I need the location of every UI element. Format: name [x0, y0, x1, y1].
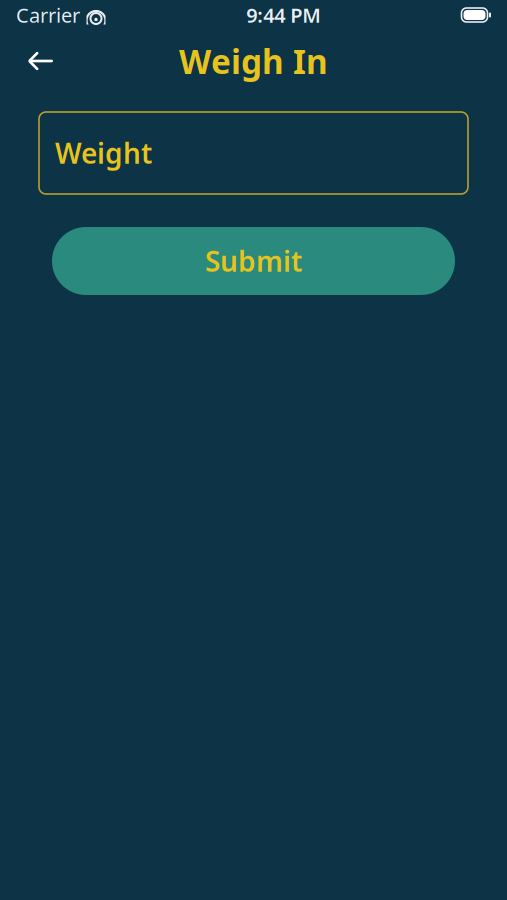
staticText: 9:44 PM: [246, 2, 321, 28]
staticText: Weight: [55, 134, 152, 172]
button[interactable]: Weight: [39, 112, 468, 194]
button[interactable]: Back: [18, 38, 64, 84]
staticText: Carrier: [16, 2, 80, 28]
staticText: Submit: [205, 242, 302, 280]
button[interactable]: Submit: [52, 227, 455, 295]
staticText: Weigh In: [179, 39, 328, 83]
